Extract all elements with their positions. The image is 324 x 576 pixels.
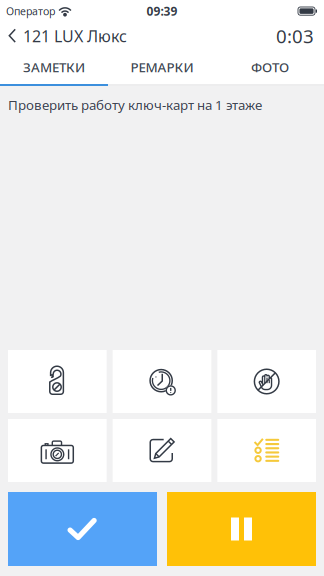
button[interactable]: Завершить [8,492,157,566]
button[interactable]: Чек-лист [217,419,316,482]
button[interactable]: Не беспокоить [8,350,107,413]
staticText: РЕМАРКИ [130,58,193,76]
staticText: 121 LUX Люкс [23,25,127,47]
button[interactable]: Камера [8,419,107,482]
staticText: Оператор [6,4,55,18]
button[interactable]: 121 LUX Люкс [0,22,135,50]
button[interactable]: Пауза [167,492,316,566]
button[interactable]: Отказ от уборки [217,350,316,413]
button[interactable]: Заметка [113,419,211,482]
button[interactable]: Опоздание [113,350,211,413]
button[interactable]: ФОТО [216,50,324,84]
button[interactable]: ЗАМЕТКИ [0,50,108,84]
button[interactable]: РЕМАРКИ [108,50,216,84]
staticText: 09:39 [146,3,177,19]
staticText: ЗАМЕТКИ [23,58,85,76]
staticText: Проверить работу ключ-карт на 1 этаже [8,96,262,114]
staticText: ФОТО [251,58,289,76]
staticText: 0:03 [276,24,314,48]
button[interactable]: 0:03 [266,22,324,50]
